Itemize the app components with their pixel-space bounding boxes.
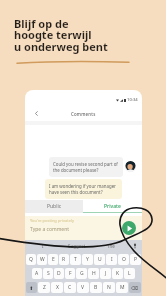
button[interactable]: E — [48, 254, 58, 265]
button[interactable]: Public — [25, 200, 83, 213]
staticText: 10:34 — [127, 97, 138, 103]
button[interactable]: J — [100, 268, 111, 279]
staticText: U — [98, 256, 102, 263]
staticText: Comments — [71, 111, 96, 117]
button[interactable]: M — [116, 282, 128, 293]
staticText: Suggest — [68, 243, 86, 249]
button[interactable]: F — [65, 268, 75, 279]
staticText: A — [35, 270, 39, 277]
button[interactable]: W — [37, 254, 47, 265]
staticText: Z — [43, 284, 46, 291]
staticText: Q — [29, 256, 33, 263]
button[interactable]: U — [94, 254, 105, 265]
button[interactable]: Private — [83, 200, 142, 213]
staticText: J — [105, 270, 107, 277]
button[interactable]: N — [103, 282, 115, 293]
staticText: V — [81, 284, 85, 291]
button[interactable]: G — [76, 268, 87, 279]
staticText: Blijf op de hoogte terwijl u onderweg be… — [14, 16, 108, 55]
button[interactable]: H — [88, 268, 99, 279]
staticText: N — [107, 284, 111, 291]
button[interactable]: Send — [122, 221, 136, 235]
staticText: Type a comment — [30, 226, 70, 233]
button[interactable]: S — [43, 268, 53, 279]
staticText: You're posting privately — [30, 218, 75, 223]
staticText: K — [116, 270, 120, 277]
staticText: ⬆ — [29, 285, 34, 291]
button[interactable]: B — [90, 282, 102, 293]
staticText: E — [52, 256, 55, 263]
staticText: T — [74, 256, 77, 263]
button[interactable]: D — [54, 268, 64, 279]
button[interactable]: R — [59, 254, 69, 265]
staticText: D — [57, 270, 61, 277]
staticText: Y — [86, 256, 89, 263]
staticText: S — [47, 270, 50, 277]
staticText: I — [111, 256, 113, 263]
button[interactable]: K — [112, 268, 123, 279]
staticText: Could you revise second part of the docu… — [53, 161, 119, 173]
button[interactable]: X — [51, 282, 63, 293]
button[interactable]: ⬆ — [26, 282, 37, 293]
button[interactable]: A — [32, 268, 42, 279]
staticText: C — [68, 284, 72, 291]
button[interactable]: T — [70, 254, 81, 265]
button[interactable]: P — [130, 254, 141, 265]
button[interactable]: V — [77, 282, 89, 293]
button[interactable]: Back — [31, 108, 42, 119]
staticText: L — [128, 270, 131, 277]
staticText: The — [107, 243, 115, 249]
staticText: B — [94, 284, 98, 291]
staticText: Public — [47, 203, 62, 210]
button[interactable]: L — [124, 268, 135, 279]
staticText: P — [134, 256, 138, 263]
button[interactable]: Y — [82, 254, 93, 265]
button[interactable]: ⌫ — [129, 282, 141, 293]
staticText: I am wondering if your manager have seen… — [49, 183, 118, 195]
staticText: H — [92, 270, 96, 277]
button[interactable]: C — [64, 282, 76, 293]
staticText: R — [62, 256, 66, 263]
button[interactable]: I — [106, 254, 117, 265]
button[interactable]: Voice input — [132, 243, 138, 249]
staticText: X — [56, 284, 59, 291]
staticText: M — [120, 284, 125, 291]
staticText: W — [40, 256, 45, 263]
button[interactable]: Q — [26, 254, 36, 265]
button[interactable]: Z — [38, 282, 50, 293]
staticText: O — [122, 256, 126, 263]
staticText: ⌫ — [131, 285, 139, 291]
staticText: G — [80, 270, 84, 277]
button[interactable]: O — [118, 254, 129, 265]
staticText: Private — [104, 203, 121, 210]
staticText: I — [42, 243, 44, 249]
staticText: F — [69, 270, 72, 277]
